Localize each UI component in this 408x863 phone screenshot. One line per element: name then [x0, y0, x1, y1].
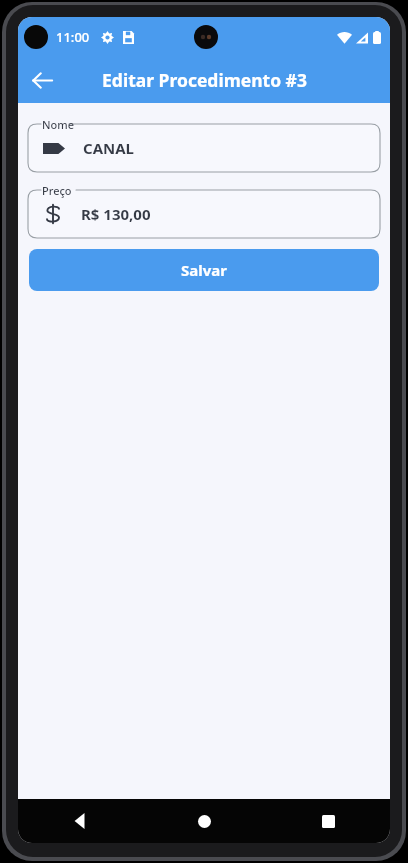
staticText: Preço: [42, 183, 72, 198]
staticText: R$ 130,00: [81, 204, 151, 224]
button[interactable]: [28, 190, 380, 238]
button[interactable]: Recent apps: [266, 799, 390, 843]
button[interactable]: [28, 124, 380, 172]
button[interactable]: Home: [142, 799, 266, 843]
staticText: 11:00: [56, 28, 90, 46]
staticText: CANAL: [83, 138, 134, 158]
staticText: Editar Procedimento #3: [102, 68, 307, 92]
button[interactable]: Back: [22, 60, 62, 100]
staticText: Salvar: [181, 260, 227, 280]
staticText: Nome: [42, 117, 74, 132]
button[interactable]: Back: [18, 799, 142, 843]
button[interactable]: Salvar: [29, 249, 379, 291]
